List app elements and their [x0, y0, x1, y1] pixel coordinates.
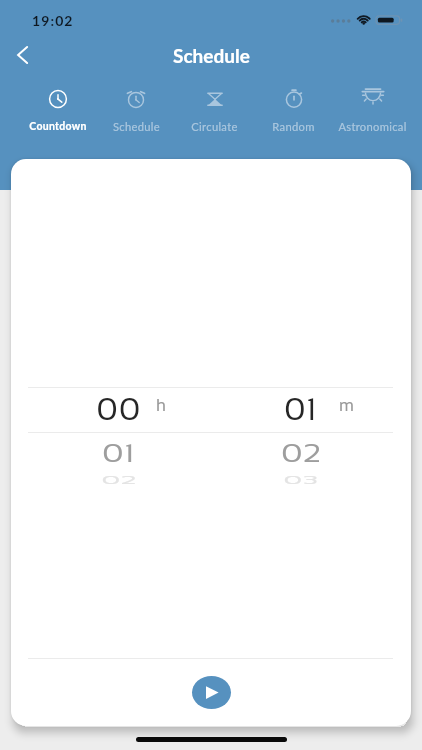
button[interactable]: Circulate: [175, 88, 254, 133]
button[interactable]: Astronomical: [333, 88, 412, 133]
staticText: 01: [102, 440, 136, 468]
staticText: 01: [284, 393, 318, 427]
staticText: h: [156, 396, 167, 415]
staticText: Circulate: [191, 120, 238, 133]
staticText: 02: [101, 473, 137, 487]
staticText: m: [339, 396, 354, 415]
button[interactable]: Countdown: [19, 88, 97, 133]
button[interactable]: Random: [254, 88, 333, 133]
button[interactable]: Start: [192, 676, 231, 709]
staticText: Random: [272, 120, 315, 133]
staticText: 00: [96, 393, 142, 427]
staticText: 02: [281, 440, 322, 468]
staticText: 19:02: [32, 12, 74, 29]
button[interactable]: Schedule: [97, 88, 175, 133]
staticText: 03: [283, 473, 319, 487]
button[interactable]: Back: [4, 37, 40, 73]
staticText: Schedule: [113, 120, 160, 133]
staticText: Schedule: [173, 44, 250, 67]
staticText: Astronomical: [338, 120, 407, 133]
staticText: Countdown: [29, 120, 87, 133]
